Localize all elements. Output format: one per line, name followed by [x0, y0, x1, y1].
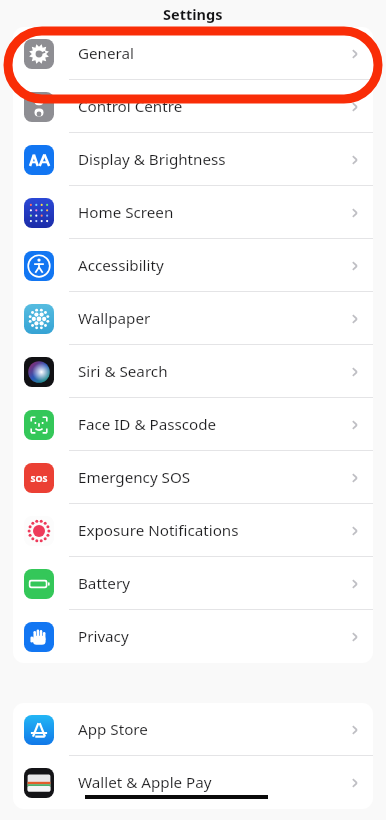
staticText: Wallpaper	[78, 308, 151, 329]
staticText: Siri & Search	[78, 361, 168, 382]
staticText: App Store	[78, 719, 148, 740]
button[interactable]: Siri & Search	[13, 345, 373, 398]
staticText: Home Screen	[78, 202, 174, 223]
button[interactable]: Accessibility	[13, 239, 373, 292]
button[interactable]: General	[13, 27, 373, 80]
button[interactable]: Exposure Notifications	[13, 504, 373, 557]
button[interactable]: Wallet & Apple Pay	[13, 756, 373, 809]
staticText: Control Centre	[78, 96, 183, 117]
button[interactable]: Emergency SOS	[13, 451, 373, 504]
staticText: Wallet & Apple Pay	[78, 772, 212, 793]
staticText: General	[78, 43, 134, 64]
staticText: Emergency SOS	[78, 467, 191, 488]
staticText: Face ID & Passcode	[78, 414, 217, 435]
button[interactable]: App Store	[13, 703, 373, 756]
staticText: Display & Brightness	[78, 149, 226, 170]
button[interactable]: Privacy	[13, 610, 373, 663]
staticText: Battery	[78, 573, 130, 594]
button[interactable]: Wallpaper	[13, 292, 373, 345]
staticText: Privacy	[78, 626, 129, 647]
staticText: Settings	[163, 4, 223, 24]
button[interactable]: Battery	[13, 557, 373, 610]
button[interactable]: Display & Brightness	[13, 133, 373, 186]
staticText: SOS	[30, 472, 48, 484]
button[interactable]: Face ID & Passcode	[13, 398, 373, 451]
button[interactable]: Home Screen	[13, 186, 373, 239]
staticText: Accessibility	[78, 255, 164, 276]
staticText: Exposure Notifications	[78, 520, 239, 541]
button[interactable]: Control Centre	[13, 80, 373, 133]
